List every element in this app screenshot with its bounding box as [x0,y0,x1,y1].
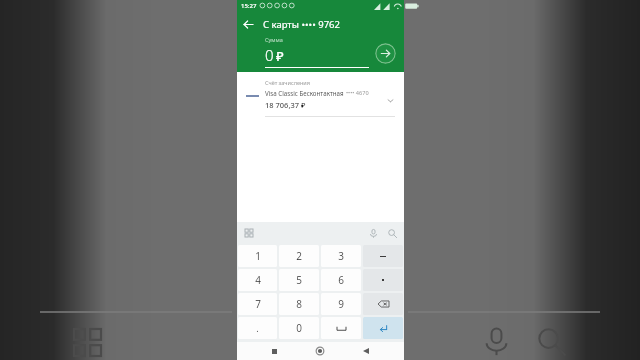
button[interactable]: Backspace [363,293,403,315]
staticText: 2 [296,249,302,263]
button[interactable]: Счёт зачисления [237,72,404,117]
staticText: Сумма [265,36,283,43]
button[interactable]: 3 [321,245,361,267]
button[interactable]: 2 [279,245,319,267]
staticText: ₽ [276,47,284,65]
button[interactable]: 0 [279,317,319,339]
button[interactable]: Voice input [366,226,380,240]
staticText: Счёт зачисления [265,79,310,86]
button[interactable]: 7 [238,293,277,315]
staticText: Visa Classic Бесконтактная [265,89,344,97]
staticText: 0 [265,45,274,65]
staticText: 5 [296,273,302,287]
staticText: 3 [338,249,344,263]
button[interactable]: Keyboard layouts [242,226,256,240]
button[interactable]: Back [358,343,374,359]
button[interactable]: Search [385,226,399,240]
staticText: 6 [338,273,344,287]
button[interactable]: 8 [279,293,319,315]
button[interactable]: Enter [363,317,403,339]
staticText: •••• 4670 [346,89,369,97]
button[interactable]: Back [237,13,259,35]
staticText: 9 [338,297,344,311]
staticText: 1 [255,249,261,263]
button[interactable]: 5 [279,269,319,291]
button[interactable]: Space [321,317,361,339]
button[interactable]: 6 [321,269,361,291]
button[interactable]: . [238,317,277,339]
staticText: 7 [255,297,261,311]
staticText: 4 [255,273,261,287]
staticText: 15:27 [241,2,257,10]
staticText: . [256,322,259,334]
button[interactable]: 1 [238,245,277,267]
staticText: С карты •••• 9762 [263,18,340,31]
staticText: 0 [296,321,302,335]
button[interactable]: Comma [363,269,403,291]
button[interactable]: Continue [375,43,396,64]
button[interactable]: Recents [266,343,282,359]
button[interactable]: Dash [363,245,403,267]
button[interactable]: Home [312,343,328,359]
staticText: 8 [296,297,302,311]
staticText: 18 706,37 ₽ [265,100,306,110]
button[interactable]: 9 [321,293,361,315]
button[interactable]: 4 [238,269,277,291]
